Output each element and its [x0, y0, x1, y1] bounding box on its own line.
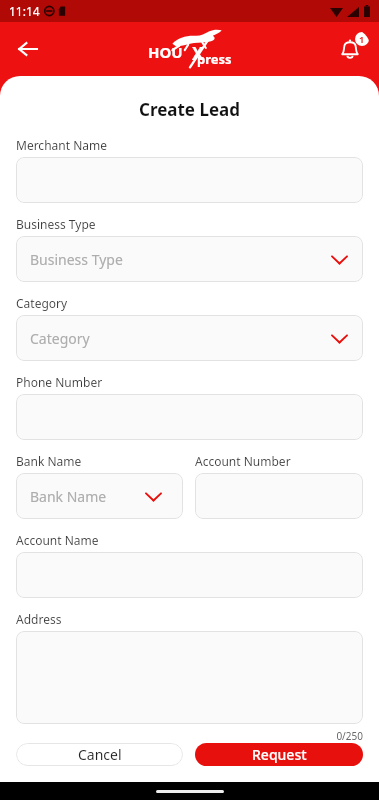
staticText: Account Name [16, 532, 99, 548]
button[interactable] [16, 631, 363, 724]
staticText: X [192, 42, 204, 65]
staticText: Account Number [195, 453, 291, 469]
staticText: Bank Name [30, 487, 107, 506]
button[interactable] [16, 552, 363, 598]
button[interactable]: Business Type [16, 236, 363, 282]
button[interactable]: Notifications [329, 28, 371, 70]
button[interactable]: Request [195, 743, 363, 766]
button[interactable]: Category [16, 315, 363, 361]
staticText: 1 [359, 33, 365, 45]
button[interactable] [16, 157, 363, 203]
staticText: 11:14 [9, 3, 40, 19]
staticText: Bank Name [16, 453, 82, 469]
staticText: Phone Number [16, 374, 103, 390]
staticText: press [197, 50, 232, 68]
staticText: Request [252, 745, 307, 764]
staticText: Address [16, 611, 62, 627]
staticText: HOU [148, 42, 183, 62]
staticText: 0/250 [16, 729, 363, 743]
staticText: Create Lead [16, 98, 363, 121]
button[interactable]: Back [6, 27, 50, 71]
staticText: Business Type [30, 250, 123, 269]
button[interactable] [16, 394, 363, 440]
staticText: Category [30, 329, 90, 348]
staticText: Category [16, 295, 68, 311]
button[interactable]: Bank Name [16, 473, 183, 519]
button[interactable]: Cancel [16, 743, 183, 766]
button[interactable] [195, 473, 363, 519]
staticText: Cancel [78, 745, 122, 764]
staticText: Merchant Name [16, 137, 107, 153]
staticText: Business Type [16, 216, 96, 232]
